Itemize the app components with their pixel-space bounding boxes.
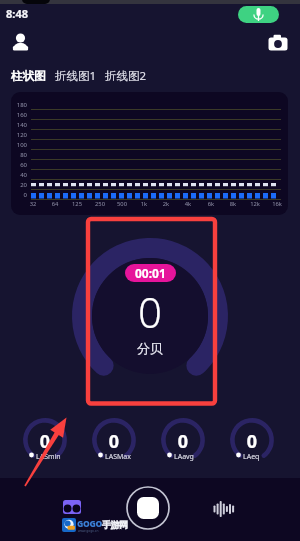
staticText: www.gogo.cn [78,529,99,533]
staticText: 0 [11,429,79,454]
staticText: 64 [45,200,65,208]
staticText: 0 [80,429,148,454]
staticText: LAavg [174,452,194,462]
staticText: 140 [11,121,27,129]
staticText: 32 [23,200,43,208]
staticText: 2k [156,200,176,208]
staticText: 12k [245,200,265,208]
staticText: 80 [11,151,27,159]
staticText: 500 [112,200,132,208]
staticText: LAeq [243,452,260,462]
staticText: 0 [138,283,162,340]
staticText: 8:48 [6,6,28,21]
staticText: 16k [267,200,287,208]
staticText: 0 [218,429,286,454]
button[interactable]: Microphone in use [238,6,279,23]
button[interactable]: 折线图1 [55,68,105,84]
staticText: 6k [201,200,221,208]
button[interactable]: 折线图2 [105,68,147,84]
staticText: 180 [11,101,27,109]
staticText: 120 [11,131,27,139]
button[interactable]: 柱状图 [11,69,55,83]
button[interactable]: 0 [218,414,286,470]
button[interactable]: 0 [11,414,79,470]
staticText: 0 [149,429,217,454]
staticText: 折线图2 [105,68,147,84]
staticText: 250 [90,200,110,208]
staticText: 125 [67,200,87,208]
button[interactable]: Recordings history [58,493,86,521]
staticText: 折线图1 [55,68,97,84]
staticText: 分贝 [137,340,163,356]
staticText: LASmin [36,452,61,462]
staticText: GOGO [77,518,102,530]
staticText: 40 [11,171,27,179]
button[interactable]: Stop recording [126,486,170,530]
staticText: 00:01 [135,265,166,281]
button[interactable]: 0 [80,414,148,470]
staticText: 160 [11,111,27,119]
staticText: 20 [11,181,27,189]
staticText: LASMax [105,452,131,462]
staticText: 100 [11,141,27,149]
staticText: 1k [134,200,154,208]
staticText: 手游网 [102,519,128,530]
button[interactable]: Camera [264,29,292,57]
staticText: 4k [178,200,198,208]
staticText: 8k [223,200,243,208]
staticText: 60 [11,161,27,169]
button[interactable]: 0 [149,414,217,470]
staticText: 柱状图 [11,69,46,83]
button[interactable]: 00:01 [125,264,176,282]
button[interactable]: Profile [6,28,34,56]
button[interactable]: Waveform view [209,495,237,523]
staticText: 0 [11,191,27,199]
